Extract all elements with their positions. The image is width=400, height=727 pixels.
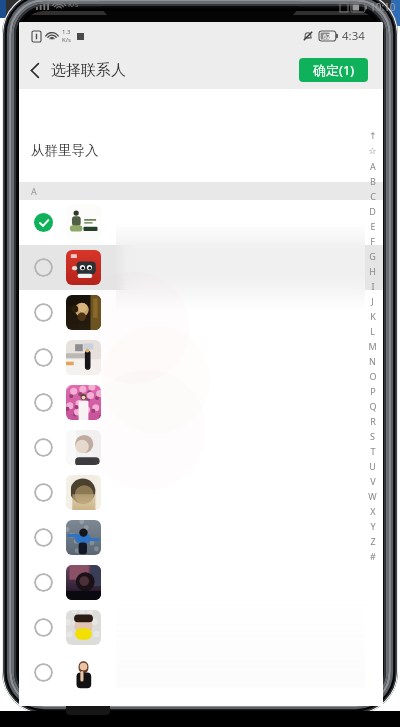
- staticText: X: [370, 505, 376, 517]
- staticText: I: [371, 280, 375, 292]
- staticText: ☆: [368, 146, 377, 156]
- button[interactable]: [19, 560, 383, 605]
- staticText: V: [370, 475, 376, 487]
- button[interactable]: 确定(1): [299, 58, 368, 82]
- staticText: J: [371, 295, 374, 307]
- staticText: D: [369, 205, 376, 217]
- button[interactable]: [19, 290, 383, 335]
- staticText: Z: [370, 535, 376, 547]
- staticText: ↑: [369, 131, 377, 141]
- staticText: P: [370, 385, 376, 397]
- button[interactable]: [19, 335, 383, 380]
- staticText: L: [370, 325, 375, 337]
- button[interactable]: [19, 650, 383, 695]
- staticText: H: [369, 265, 376, 277]
- staticText: C: [370, 190, 376, 202]
- button[interactable]: [19, 605, 383, 650]
- staticText: F: [370, 235, 375, 247]
- staticText: 1.3: [62, 28, 71, 36]
- staticText: 选择联系人: [51, 61, 126, 80]
- staticText: A: [370, 160, 376, 172]
- staticText: 4:34: [342, 28, 365, 44]
- staticText: M: [368, 340, 377, 352]
- staticText: Y: [370, 520, 376, 532]
- staticText: #: [370, 550, 376, 562]
- staticText: N: [369, 355, 376, 367]
- staticText: K: [370, 310, 376, 322]
- staticText: O: [369, 370, 377, 382]
- button[interactable]: [19, 470, 383, 515]
- staticText: K/s: [68, 0, 79, 10]
- staticText: 10:10: [370, 0, 396, 14]
- staticText: T: [370, 445, 376, 457]
- button[interactable]: [19, 515, 383, 560]
- button[interactable]: [19, 200, 383, 245]
- staticText: U: [369, 460, 376, 472]
- staticText: B: [370, 175, 376, 187]
- staticText: A: [31, 185, 37, 197]
- staticText: S: [370, 430, 375, 442]
- button[interactable]: Alphabet index: [362, 128, 383, 563]
- button[interactable]: 从群里导入: [19, 89, 383, 182]
- staticText: Q: [369, 400, 377, 412]
- staticText: R: [370, 415, 376, 427]
- staticText: K/s: [62, 36, 71, 44]
- button[interactable]: Back: [19, 54, 51, 86]
- staticText: 确定(1): [313, 61, 355, 79]
- staticText: 62: [323, 32, 331, 41]
- staticText: 从群里导入: [31, 142, 99, 159]
- button[interactable]: [19, 425, 383, 470]
- button[interactable]: [19, 380, 383, 425]
- button[interactable]: [19, 245, 383, 290]
- staticText: W: [368, 490, 377, 502]
- staticText: G: [369, 250, 376, 262]
- staticText: E: [370, 220, 376, 232]
